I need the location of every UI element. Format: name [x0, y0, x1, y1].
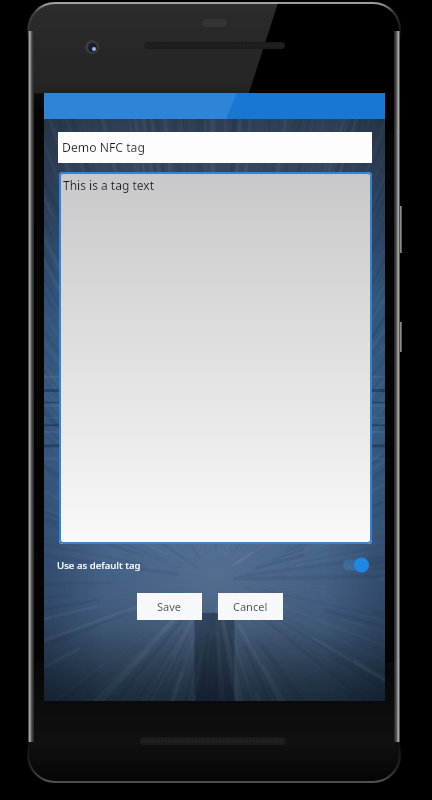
button[interactable]: Demo NFC tag: [58, 132, 372, 163]
button[interactable]: Cancel: [218, 593, 283, 620]
staticText: Save: [157, 599, 182, 614]
staticText: Use as default tag: [57, 559, 141, 572]
staticText: Demo NFC tag: [62, 139, 145, 156]
button[interactable]: Save: [137, 593, 202, 620]
button[interactable]: This is a tag text: [59, 172, 372, 544]
staticText: This is a tag text: [63, 177, 154, 193]
staticText: Cancel: [233, 599, 268, 614]
button[interactable]: Use as default tag: [343, 555, 369, 575]
